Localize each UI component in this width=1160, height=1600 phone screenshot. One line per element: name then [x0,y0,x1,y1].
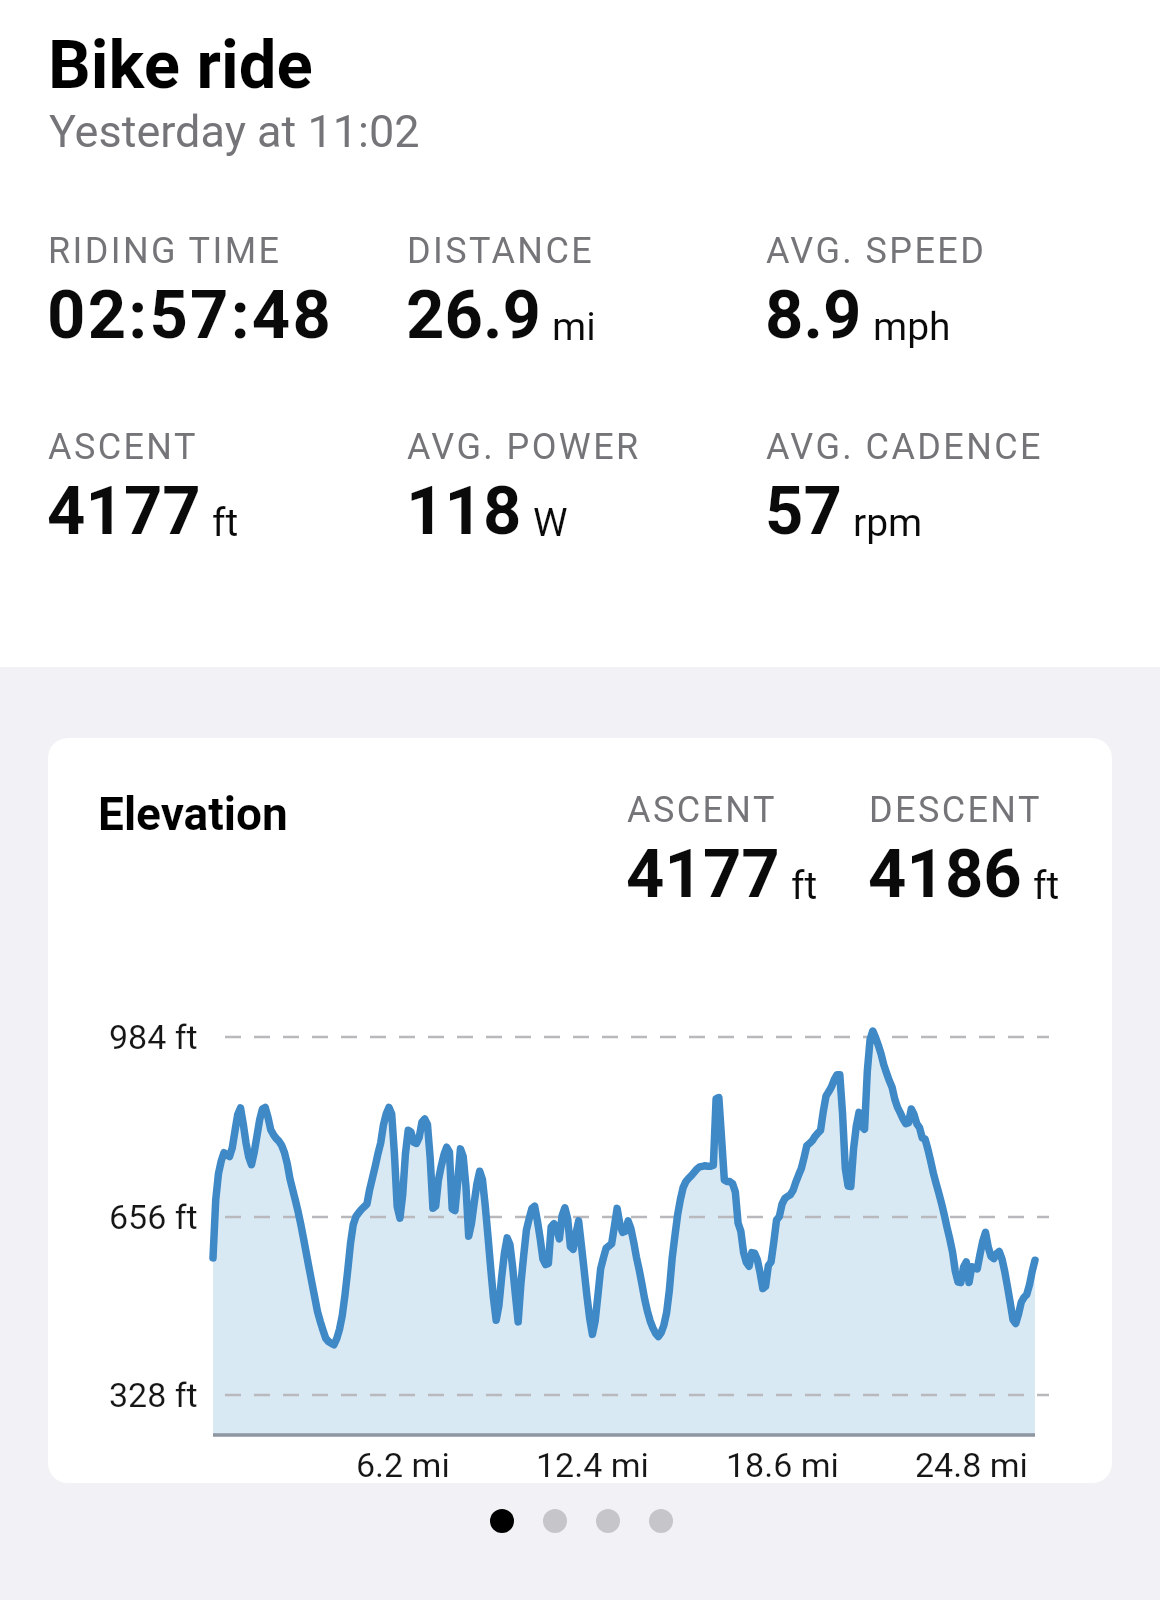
button[interactable]: Go to page 1 [490,1509,514,1533]
staticText: 57 [765,472,842,551]
staticText: Bike ride [48,26,313,105]
button[interactable]: Elevation [48,738,1112,1483]
staticText: AVG. CADENCE [766,426,1043,468]
staticText: 4177 [626,835,780,914]
staticText: rpm [853,500,923,546]
button[interactable]: Go to page 2 [543,1509,567,1533]
staticText: mi [552,304,596,350]
staticText: RIDING TIME [48,230,282,272]
button[interactable]: Go to page 4 [649,1509,673,1533]
button[interactable]: AVG. SPEED [759,223,1089,335]
button[interactable]: DESCENT [862,782,1112,894]
staticText: AVG. POWER [407,426,641,468]
staticText: 656 ft [109,1197,198,1237]
staticText: 4177 [47,472,201,551]
staticText: 118 [406,472,522,551]
staticText: Yesterday at 11:02 [49,105,420,158]
staticText: DISTANCE [407,230,595,272]
staticText: ASCENT [627,789,777,831]
staticText: mph [873,304,951,350]
staticText: ft [212,500,239,546]
staticText: AVG. SPEED [766,230,987,272]
staticText: ft [791,863,818,909]
staticText: 12.4 mi [536,1445,649,1483]
staticText: 24.8 mi [915,1445,1028,1483]
staticText: DESCENT [869,789,1042,831]
staticText: 6.2 mi [356,1445,450,1483]
button[interactable]: DISTANCE [400,223,730,335]
staticText: ft [1033,863,1060,909]
button[interactable]: ASCENT [41,419,371,531]
button[interactable]: ASCENT [620,782,950,894]
button[interactable]: AVG. POWER [400,419,730,531]
staticText: 984 ft [109,1017,198,1057]
staticText: ASCENT [48,426,198,468]
staticText: Elevation [98,787,288,841]
staticText: 4186 [868,835,1022,914]
staticText: 328 ft [109,1375,198,1415]
button[interactable]: RIDING TIME [41,223,371,335]
button[interactable]: Go to page 3 [596,1509,620,1533]
staticText: 18.6 mi [726,1445,839,1483]
staticText: 8.9 [765,276,862,355]
staticText: 02:57:48 [47,276,334,355]
staticText: W [533,500,568,546]
button[interactable]: AVG. CADENCE [759,419,1089,531]
staticText: 26.9 [406,276,541,355]
